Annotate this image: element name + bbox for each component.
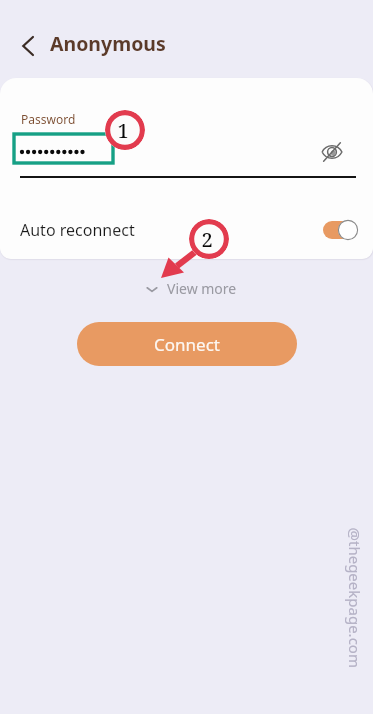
- staticText: Auto reconnect: [20, 219, 135, 241]
- staticText: Connect: [154, 333, 220, 356]
- button[interactable]: Auto reconnect toggle: [323, 219, 359, 241]
- staticText: Anonymous: [50, 30, 166, 57]
- button[interactable]: Connect: [77, 322, 297, 366]
- button[interactable]: View more: [142, 275, 241, 302]
- button[interactable]: Back: [9, 26, 43, 60]
- staticText: Password: [21, 111, 76, 127]
- staticText: 2: [201, 226, 213, 253]
- button[interactable]: [20, 139, 92, 165]
- button[interactable]: Auto reconnect: [0, 209, 373, 251]
- staticText: 1: [117, 117, 129, 144]
- staticText: @thegeekpage.com: [344, 527, 364, 668]
- staticText: View more: [167, 279, 237, 298]
- button[interactable]: Show password: [317, 139, 347, 165]
